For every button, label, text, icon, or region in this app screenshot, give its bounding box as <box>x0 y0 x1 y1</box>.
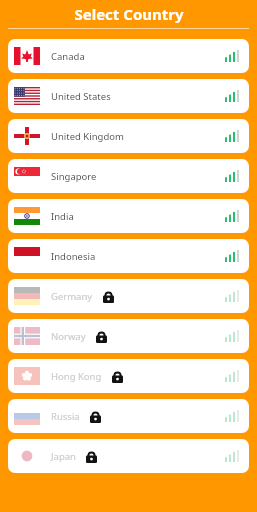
staticText: United Kingdom <box>51 130 124 143</box>
staticText: Singapore <box>51 170 97 183</box>
button[interactable]: Hong Kong <box>8 359 249 393</box>
staticText: United States <box>51 90 111 103</box>
button[interactable]: India <box>8 199 249 233</box>
other: Locked <box>86 450 97 463</box>
button[interactable]: Japan <box>8 439 249 473</box>
button[interactable]: United States <box>8 79 249 113</box>
other: Locked <box>112 370 123 383</box>
other: Locked <box>103 290 114 303</box>
other: Locked <box>90 410 101 423</box>
button[interactable]: Singapore <box>8 159 249 193</box>
button[interactable]: Canada <box>8 39 249 73</box>
staticText: Indonesia <box>51 250 96 263</box>
staticText: Japan <box>51 450 76 463</box>
other: Locked <box>96 330 107 343</box>
staticText: Germany <box>51 290 93 303</box>
staticText: India <box>51 210 74 223</box>
button[interactable]: Norway <box>8 319 249 353</box>
button[interactable]: Indonesia <box>8 239 249 273</box>
staticText: Hong Kong <box>51 370 102 383</box>
staticText: Norway <box>51 330 86 343</box>
button[interactable]: United Kingdom <box>8 119 249 153</box>
button[interactable]: Germany <box>8 279 249 313</box>
staticText: Select Country <box>74 4 184 24</box>
staticText: Russia <box>51 410 80 423</box>
button[interactable]: Russia <box>8 399 249 433</box>
staticText: Canada <box>51 50 85 63</box>
